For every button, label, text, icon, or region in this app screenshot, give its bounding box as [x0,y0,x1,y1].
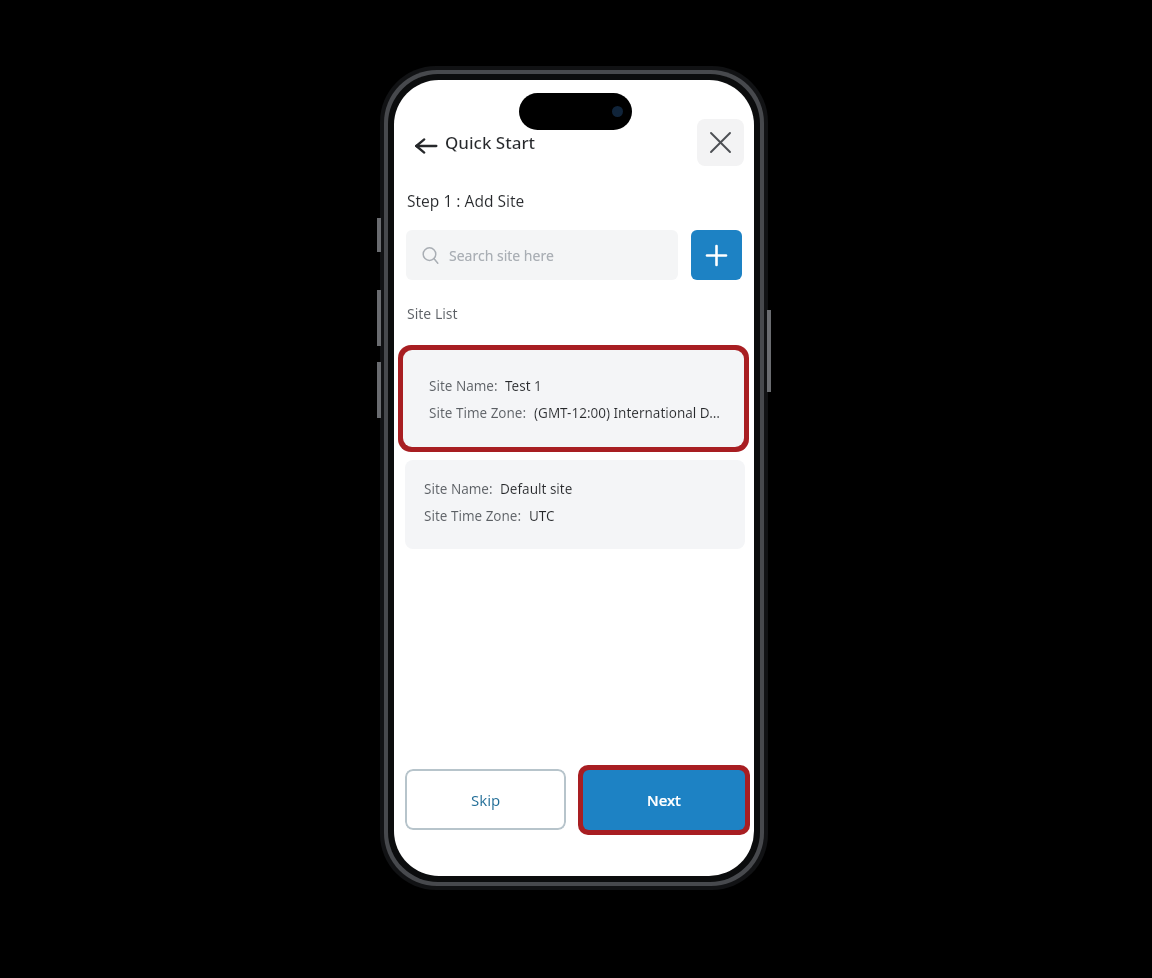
staticText: Next [647,790,681,810]
staticText: Site Name: [429,377,498,395]
button[interactable]: Site Name: [405,460,745,549]
staticText: Quick Start [445,131,536,154]
staticText: Site Time Zone: [429,404,527,422]
staticText: Test 1 [505,377,542,395]
staticText: Site Time Zone: [424,507,522,525]
staticText: Step 1 : Add Site [407,190,525,211]
button[interactable]: Site Name: [398,345,749,452]
button[interactable]: Next [578,765,750,835]
button[interactable]: Close [697,119,744,166]
button[interactable]: Skip [405,769,566,830]
staticText: Search site here [449,246,554,265]
button[interactable]: Add site [691,230,742,280]
staticText: Default site [500,480,573,498]
button[interactable]: Back [402,122,450,170]
staticText: UTC [529,507,555,525]
staticText: Site Name: [424,480,493,498]
staticText: Skip [471,790,501,810]
staticText: Site List [407,304,458,323]
staticText: (GMT-12:00) International D… [534,404,720,422]
button[interactable]: Search site here [406,230,678,280]
